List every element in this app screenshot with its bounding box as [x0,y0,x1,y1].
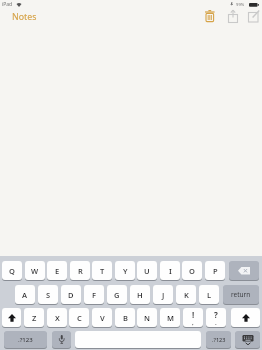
staticText: R [78,266,83,276]
staticText: C [77,313,82,323]
button[interactable]: B [115,308,135,327]
staticText: Y [123,266,128,276]
button[interactable] [2,308,21,327]
button[interactable]: J [153,285,173,304]
button[interactable]: M [160,308,180,327]
staticText: return [231,290,251,299]
staticText: Q [9,266,15,276]
staticText: W [31,266,39,276]
button[interactable]: W [25,261,45,280]
staticText: B [123,313,128,323]
button[interactable]: .?123 [206,331,231,348]
button[interactable]: D [61,285,81,304]
staticText: .?123 [18,336,33,344]
staticText: E [55,266,60,276]
button[interactable] [247,9,262,24]
button[interactable]: S [38,285,58,304]
button[interactable] [203,9,217,24]
button[interactable]: F [84,285,104,304]
staticText: I [169,266,172,276]
button[interactable]: E [47,261,67,280]
button[interactable]: H [130,285,150,304]
button[interactable]: R [70,261,90,280]
staticText: S [46,290,51,300]
staticText: H [137,290,143,300]
staticText: G [114,290,120,300]
button[interactable] [75,331,201,348]
button[interactable]: Q [2,261,22,280]
button[interactable]: .?123 [4,331,47,348]
button[interactable]: Y [115,261,135,280]
button[interactable]: O [182,261,202,280]
staticText: Z [32,313,37,323]
button[interactable]: A [15,285,35,304]
button[interactable]: C [69,308,89,327]
button[interactable] [231,308,260,327]
button[interactable]: return [223,285,259,304]
staticText: F [92,290,97,300]
staticText: L [207,290,212,300]
staticText: Notes [12,11,37,23]
staticText: X [55,313,60,323]
button[interactable]: T [92,261,112,280]
staticText: M [167,313,174,323]
staticText: iPad [2,1,13,8]
staticText: P [213,266,218,276]
button[interactable]: G [107,285,127,304]
staticText: T [100,266,105,276]
button[interactable]: ? [206,308,226,327]
staticText: .?123 [212,336,226,343]
button[interactable]: V [92,308,112,327]
button[interactable] [226,9,240,24]
staticText: A [22,290,28,300]
staticText: 99% [236,2,245,8]
staticText: ? [214,309,218,320]
staticText: D [68,290,74,300]
staticText: J [162,290,165,300]
staticText: ! [192,309,195,320]
button[interactable]: N [137,308,157,327]
button[interactable]: Notes [12,11,37,23]
button[interactable]: ! [183,308,203,327]
button[interactable] [229,261,259,280]
staticText: . [215,319,217,327]
staticText: N [144,313,150,323]
button[interactable]: X [47,308,67,327]
button[interactable]: K [176,285,196,304]
staticText: U [144,266,150,276]
staticText: , [192,319,194,327]
button[interactable]: U [137,261,157,280]
staticText: V [100,313,105,323]
staticText: K [184,290,189,300]
button[interactable]: I [160,261,180,280]
button[interactable] [52,331,71,348]
staticText: O [189,266,195,276]
button[interactable] [235,331,260,348]
button[interactable]: L [199,285,219,304]
button[interactable]: Z [24,308,44,327]
button[interactable]: P [205,261,225,280]
